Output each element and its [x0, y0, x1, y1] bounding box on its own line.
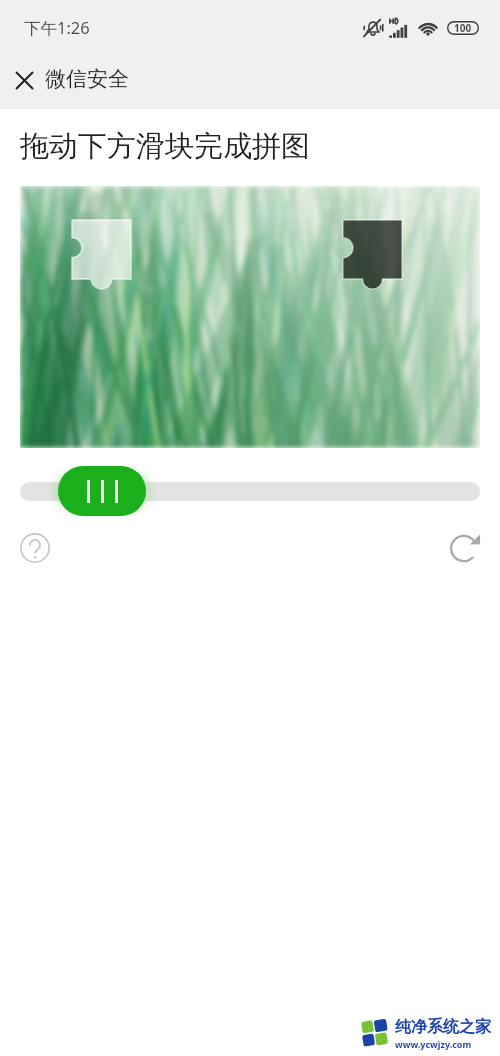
- button[interactable]: Refresh: [443, 526, 487, 570]
- staticText: 微信安全: [45, 66, 129, 92]
- staticText: 纯净系统之家: [395, 1017, 491, 1037]
- button[interactable]: Slide to verify: [58, 466, 146, 516]
- staticText: 100: [454, 21, 472, 35]
- staticText: www.ycwjzy.com: [395, 1038, 472, 1050]
- button[interactable]: Close: [2, 58, 46, 102]
- button[interactable]: Help: [13, 526, 57, 570]
- staticText: 下午1:26: [24, 16, 90, 39]
- staticText: 拖动下方滑块完成拼图: [20, 128, 310, 165]
